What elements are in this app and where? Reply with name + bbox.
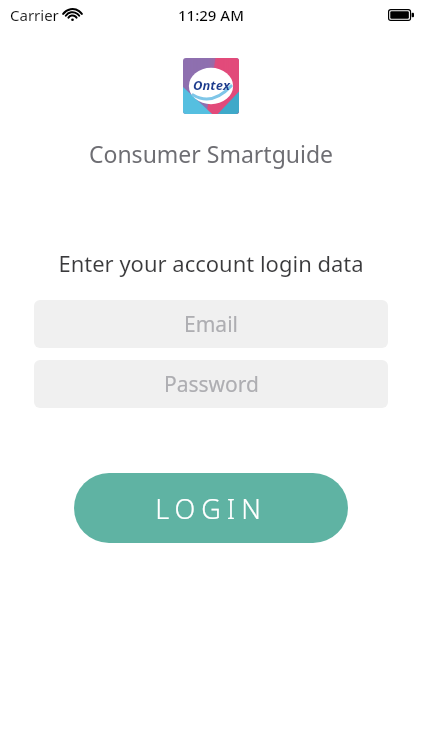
button[interactable]: Email (34, 300, 388, 348)
staticText: Email (184, 310, 238, 339)
staticText: LOGIN (155, 490, 267, 527)
staticText: Ontex (193, 76, 230, 94)
staticText: Carrier (10, 5, 59, 25)
button[interactable]: LOGIN (74, 473, 348, 543)
staticText: 11:29 AM (178, 5, 244, 25)
other: Ontex logo (183, 58, 239, 114)
staticText: Consumer Smartguide (0, 138, 422, 169)
staticText: Enter your account login data (0, 248, 422, 278)
staticText: Password (164, 370, 259, 399)
button[interactable]: Password (34, 360, 388, 408)
